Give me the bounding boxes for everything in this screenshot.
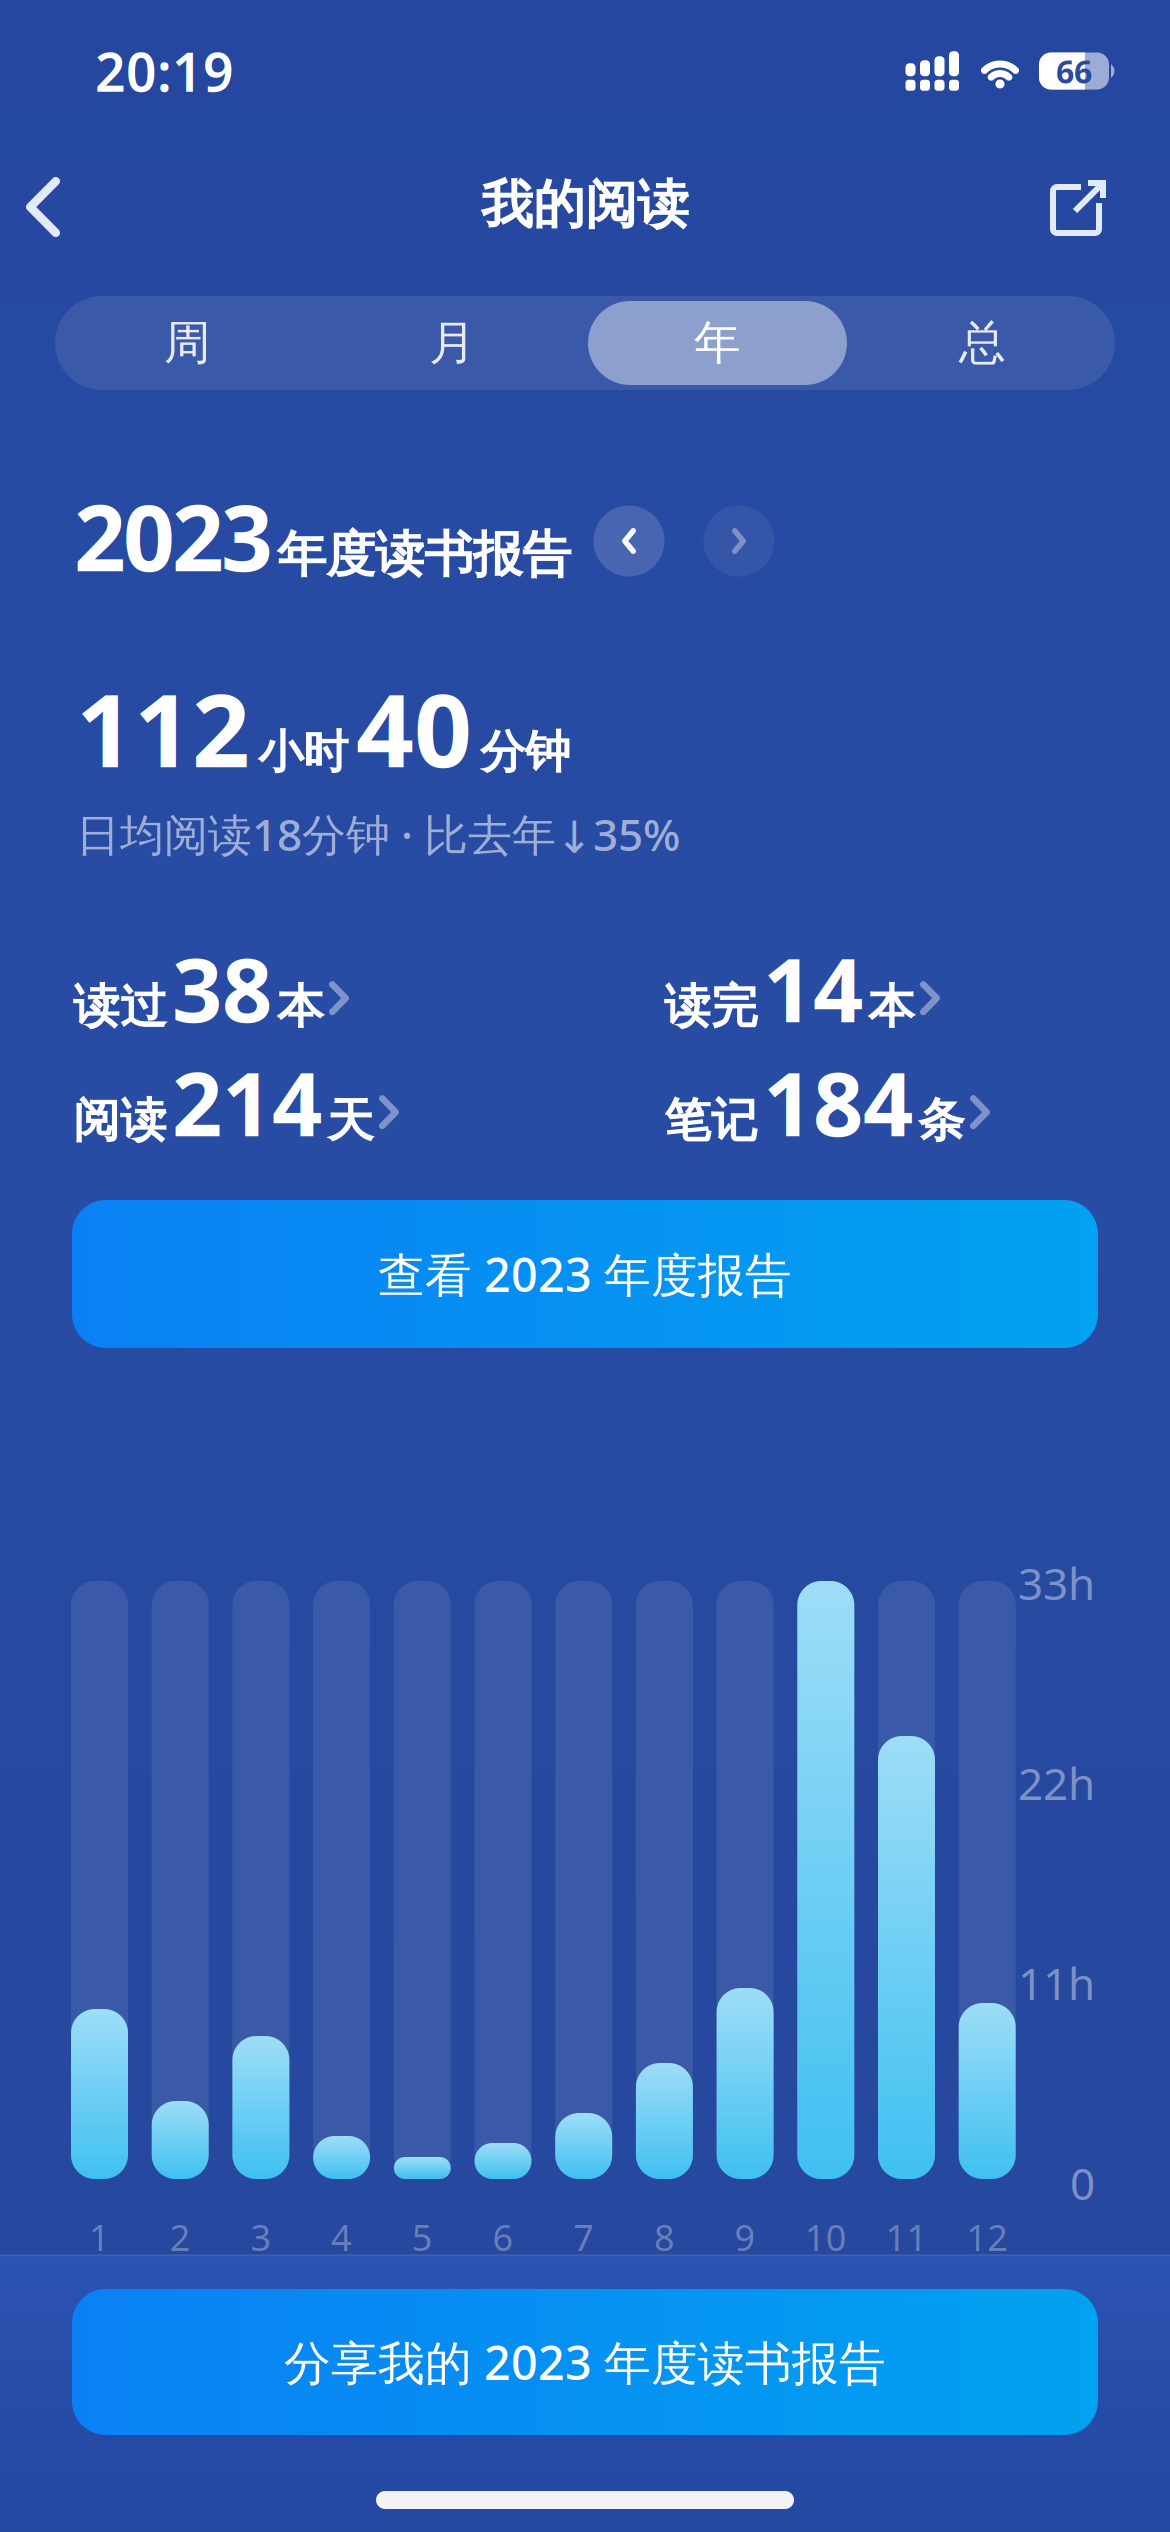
staticText: 9 [735,2213,756,2261]
staticText: 年 [694,314,741,372]
staticText: 月 [429,314,476,372]
staticText: 214 [172,1044,322,1160]
staticText: 33h [1018,1554,1095,1612]
staticText: 184 [763,1044,913,1160]
staticText: 22h [1018,1754,1095,1812]
staticText: 阅读 [73,1092,167,1149]
staticText: 0 [1070,2154,1095,2212]
staticText: 1 [89,2213,110,2261]
staticText: 查看 2023 年度报告 [378,1243,792,1305]
staticText: 38 [172,930,272,1046]
staticText: 2 [170,2213,191,2261]
staticText: 7 [573,2213,594,2261]
staticText: 条 [918,1092,965,1149]
button[interactable]: 读过 [73,930,349,1046]
staticText: 笔记 [664,1092,758,1149]
button[interactable]: 查看 2023 年度报告 [72,1200,1098,1348]
button[interactable]: 总 [850,296,1115,390]
staticText: 5 [412,2213,433,2261]
staticText: 12 [966,2213,1008,2261]
staticText: 我的阅读 [481,173,689,237]
button[interactable]: Previous year [593,505,664,576]
staticText: 分享我的 2023 年度读书报告 [284,2331,886,2393]
staticText: 4 [331,2213,352,2261]
staticText: 本 [868,978,915,1035]
staticText: 8 [654,2213,675,2261]
staticText: 年度读书报告 [277,524,571,585]
button[interactable]: 阅读 [73,1044,399,1160]
staticText: 读过 [73,978,167,1035]
staticText: 读完 [664,978,758,1035]
button[interactable]: Back [14,165,72,249]
staticText: 分钟 [480,724,570,780]
staticText: 112 [76,661,250,795]
button[interactable]: 读完 [664,930,940,1046]
staticText: 20:19 [95,36,234,106]
staticText: 11 [885,2213,927,2261]
button[interactable]: 月 [320,296,585,390]
button[interactable]: Share [1041,169,1117,245]
staticText: 周 [164,314,211,372]
staticText: 11h [1018,1954,1095,2012]
staticText: 2023 [74,476,273,596]
button[interactable]: Next year [703,505,774,576]
button[interactable]: 年 [585,296,850,390]
staticText: 14 [763,930,863,1046]
staticText: 6 [492,2213,513,2261]
staticText: 10 [805,2213,847,2261]
staticText: 66 [1056,50,1092,92]
staticText: 天 [327,1092,374,1149]
staticText: 本 [277,978,324,1035]
button[interactable]: 笔记 [664,1044,990,1160]
staticText: 40 [356,661,472,795]
button[interactable]: 周 [55,296,320,390]
staticText: 总 [959,314,1006,372]
staticText: 日均阅读18分钟 · 比去年↓35% [76,805,680,863]
button[interactable]: 分享我的 2023 年度读书报告 [72,2289,1098,2435]
staticText: 小时 [258,724,348,780]
staticText: 3 [250,2213,271,2261]
